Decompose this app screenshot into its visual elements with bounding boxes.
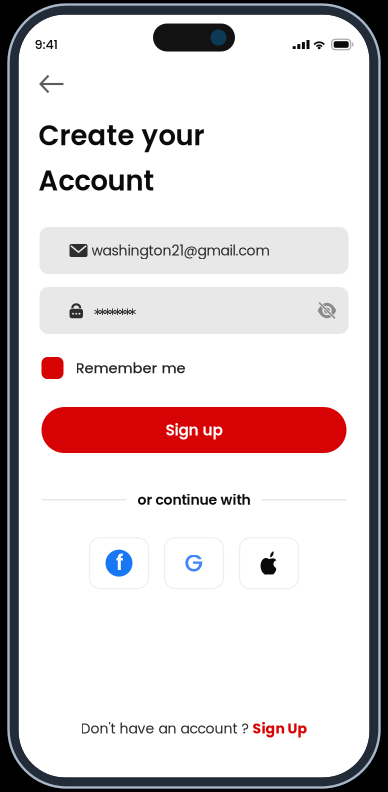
staticText: Remember me [75,358,185,378]
staticText: washington21@gmail.com [91,241,269,260]
staticText: or continue with [137,490,250,510]
button[interactable]: Remember me [18,354,369,382]
button[interactable]: Continue with Apple [239,538,298,589]
staticText: Create your [38,116,204,155]
staticText: Sign up [165,419,222,441]
button[interactable]: Back [32,69,71,99]
button[interactable]: Continue with Facebook [89,538,148,589]
staticText: Don't have an account ? [80,719,252,738]
staticText: G [184,546,203,580]
staticText: Sign Up [252,719,307,738]
staticText: Account [38,162,154,200]
staticText: 9:41 [34,36,57,53]
button[interactable]: Sign Up [252,719,307,738]
staticText: f [116,548,123,578]
button[interactable]: Continue with Google [164,538,223,589]
button[interactable]: Sign up [18,407,369,453]
staticText: ∗∗∗∗∗∗∗∗ [93,305,137,318]
